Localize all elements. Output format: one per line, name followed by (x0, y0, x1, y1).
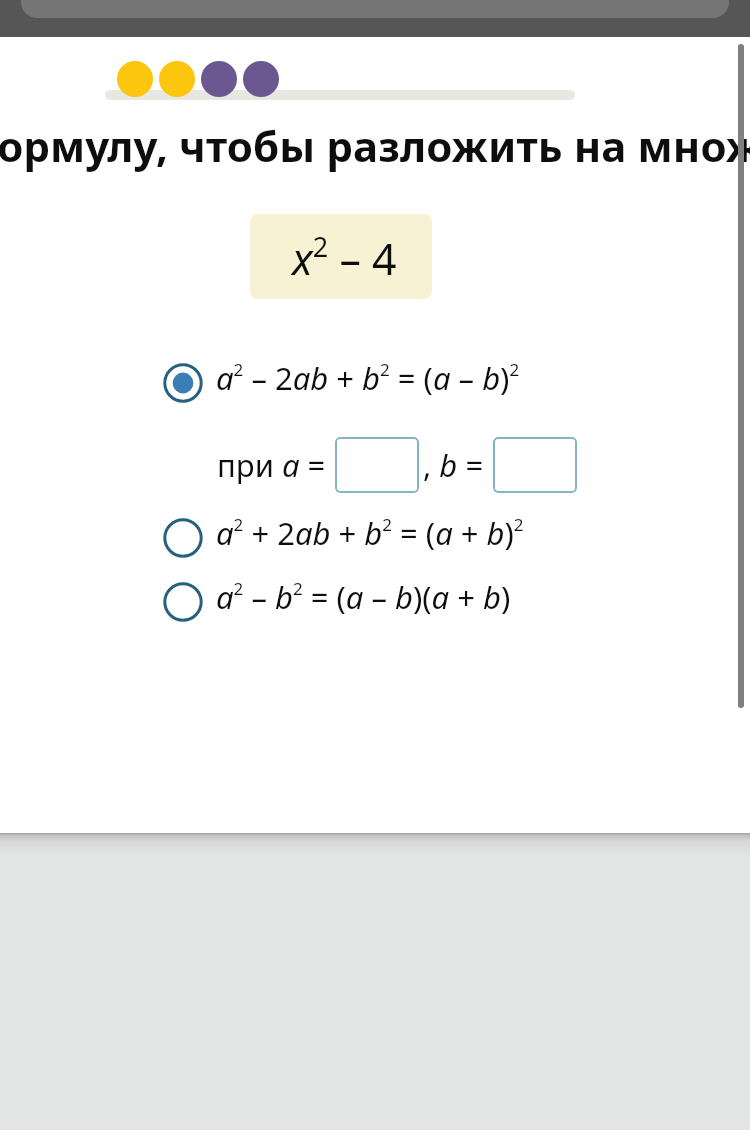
button[interactable]: a² − 2ab + b² = (a − b)² (150, 351, 550, 415)
button[interactable]: a² − b² = (a − b)(a + b) (150, 570, 550, 634)
button[interactable]: Значение b (493, 437, 577, 493)
button[interactable]: Значение a (335, 437, 419, 493)
staticText: , b = (423, 444, 484, 486)
staticText: Выбери формулу, чтобы разложить на множи… (0, 117, 750, 174)
button[interactable]: a² + 2ab + b² = (a + b)² (150, 506, 550, 570)
staticText: a2 + 2ab + b2 = (a + b)2 (216, 512, 524, 554)
staticText: x2 – 4 (292, 228, 397, 287)
staticText: a2 – b2 = (a – b)(a + b) (216, 576, 511, 618)
staticText: при a = (217, 444, 326, 486)
staticText: a2 – 2ab + b2 = (a – b)2 (216, 357, 520, 399)
